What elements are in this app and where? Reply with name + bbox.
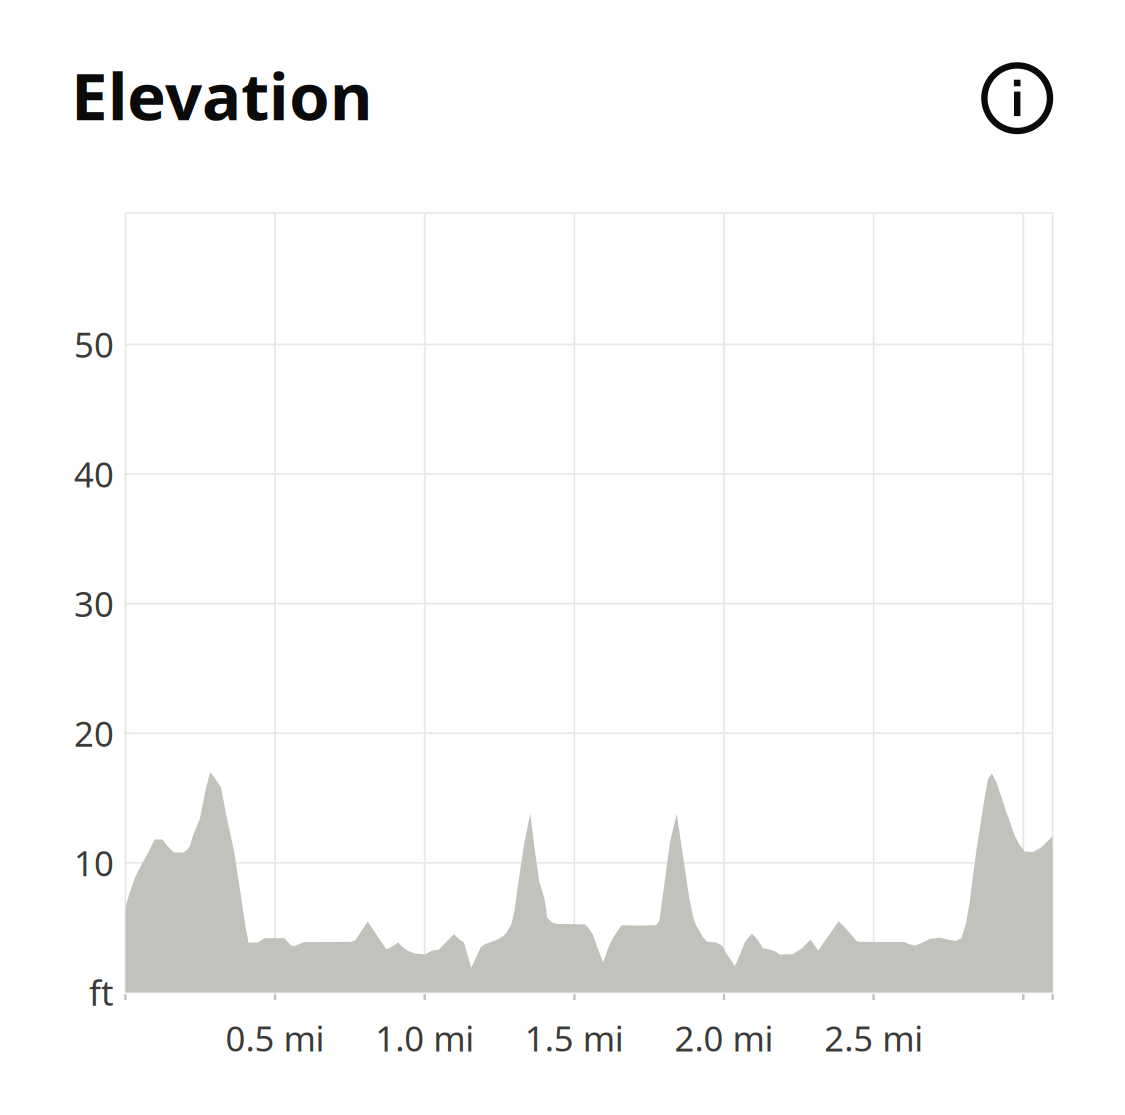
- staticText: 2.0 mi: [674, 1015, 773, 1061]
- staticText: 1.0 mi: [375, 1015, 474, 1061]
- staticText: 0.5 mi: [226, 1015, 325, 1061]
- button[interactable]: About elevation: [978, 59, 1050, 131]
- staticText: Elevation: [71, 52, 372, 138]
- staticText: 50: [74, 321, 114, 367]
- staticText: 1.5 mi: [525, 1015, 624, 1061]
- staticText: 10: [74, 840, 114, 886]
- staticText: 2.5 mi: [824, 1015, 923, 1061]
- staticText: 30: [74, 581, 114, 627]
- staticText: 40: [74, 451, 114, 497]
- staticText: ft: [89, 969, 114, 1015]
- staticText: 20: [74, 710, 114, 756]
